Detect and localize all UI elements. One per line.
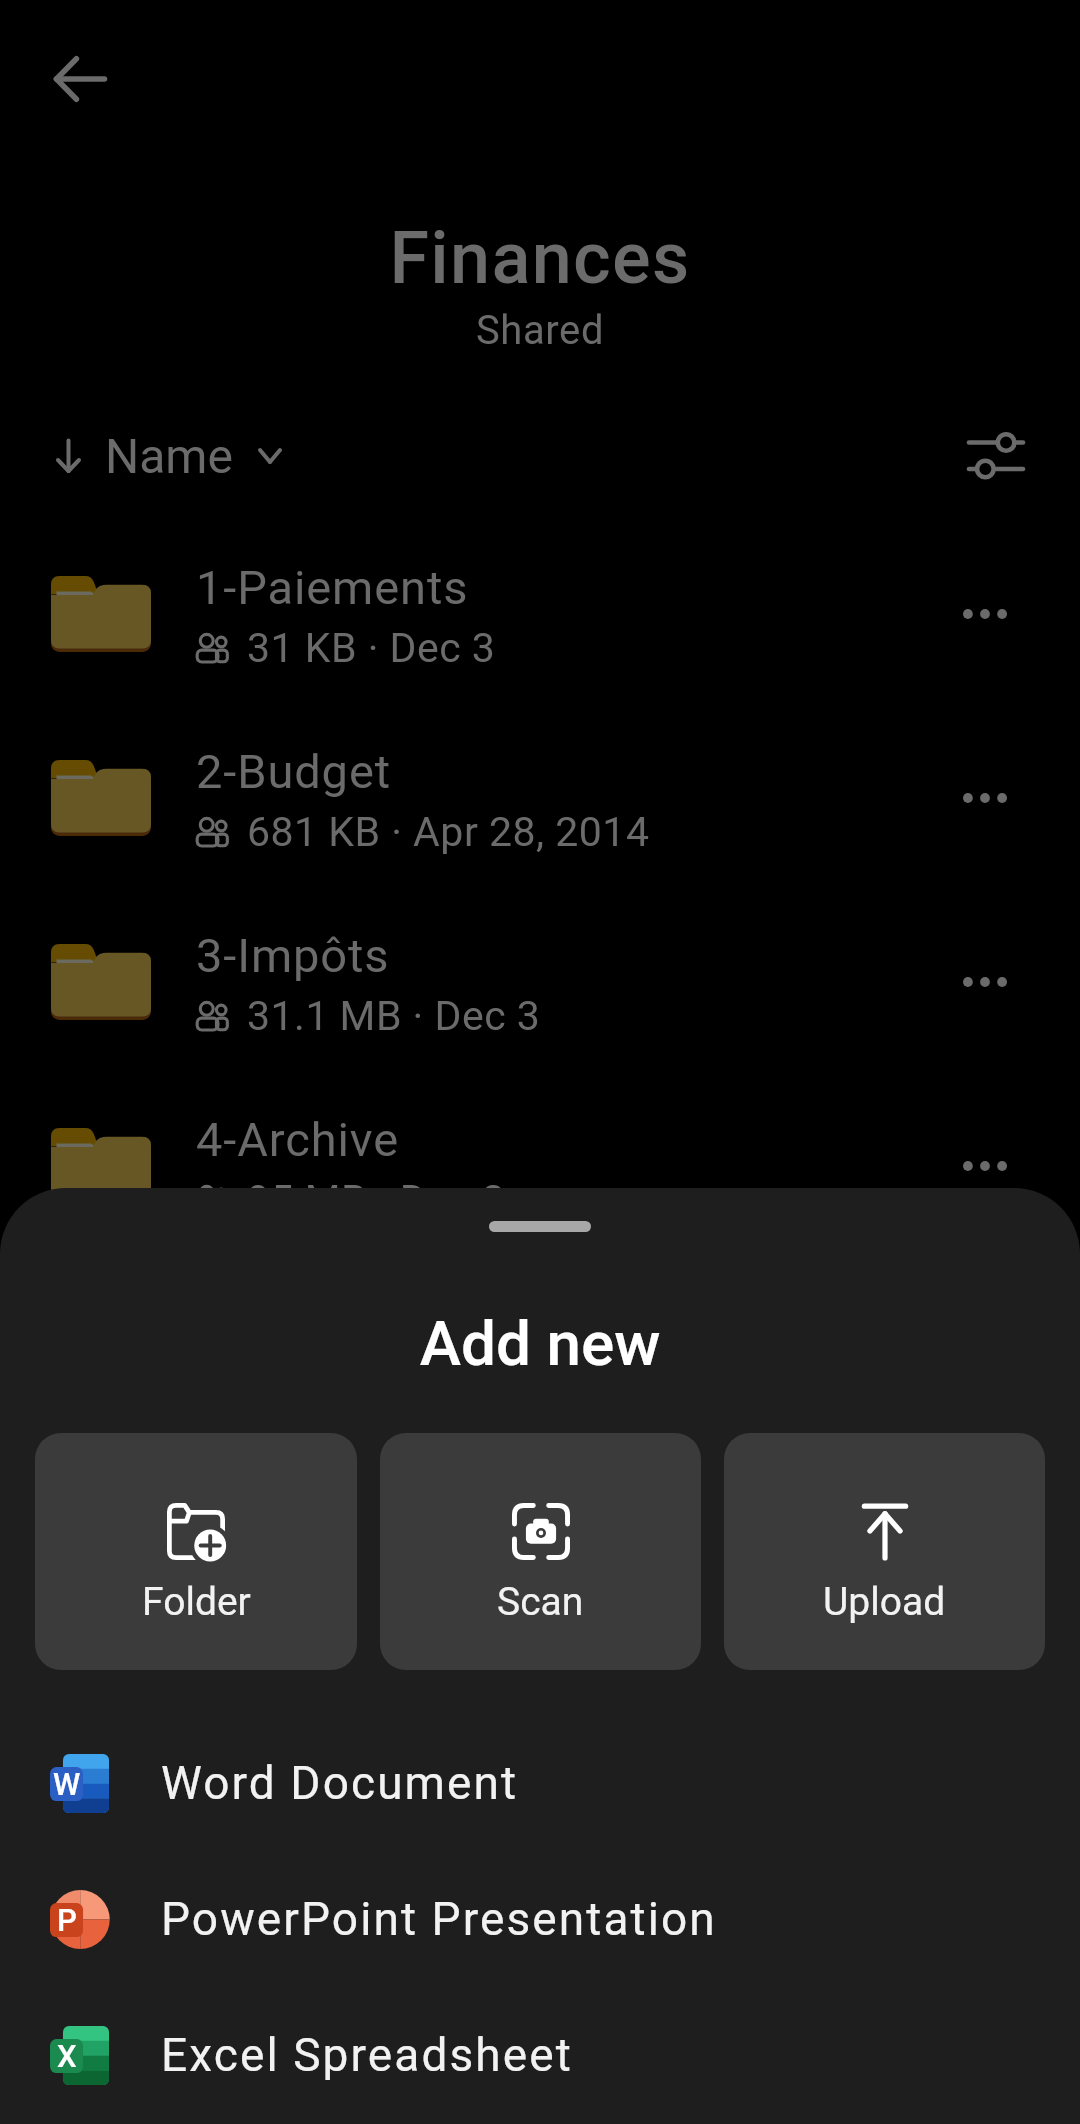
staticText: P: [57, 1902, 77, 1938]
button[interactable]: Scan: [380, 1433, 701, 1670]
staticText: Shared: [0, 307, 1080, 354]
button[interactable]: 3-Impôts: [0, 890, 1080, 1074]
staticText: 31.1 MB · Dec 3: [247, 992, 541, 1040]
button[interactable]: More options: [930, 927, 1040, 1037]
button[interactable]: 2-Budget: [0, 706, 1080, 890]
staticText: Word Document: [161, 1756, 519, 1810]
staticText: Add new: [0, 1307, 1080, 1380]
button[interactable]: More options: [930, 559, 1040, 669]
staticText: X: [57, 2038, 77, 2074]
button[interactable]: W: [0, 1715, 1080, 1851]
button[interactable]: X: [0, 1987, 1080, 2123]
button[interactable]: Folder: [35, 1433, 357, 1670]
staticText: 31 KB · Dec 3: [247, 624, 496, 672]
staticText: Name: [105, 428, 233, 484]
button[interactable]: 4-Archive: [0, 1074, 1080, 1258]
button[interactable]: More options: [930, 743, 1040, 853]
staticText: Excel Spreadsheet: [161, 2028, 573, 2082]
button[interactable]: Filter: [950, 410, 1042, 502]
staticText: 3-Impôts: [196, 928, 390, 983]
staticText: 1-Paiements: [196, 560, 469, 615]
staticText: 4-Archive: [196, 1112, 399, 1167]
staticText: Upload: [823, 1579, 946, 1625]
staticText: 681 KB · Apr 28, 2014: [247, 808, 650, 856]
staticText: 2-Budget: [196, 744, 391, 799]
button[interactable]: P: [0, 1851, 1080, 1987]
button[interactable]: Upload: [724, 1433, 1045, 1670]
staticText: 95 MB · Dec 3: [247, 1176, 506, 1224]
button[interactable]: Name: [44, 416, 294, 496]
staticText: Finances: [0, 216, 1080, 300]
button[interactable]: More options: [930, 1111, 1040, 1221]
staticText: Folder: [142, 1579, 251, 1625]
staticText: Scan: [497, 1579, 584, 1625]
staticText: W: [53, 1766, 81, 1802]
staticText: PowerPoint Presentation: [161, 1892, 717, 1946]
button[interactable]: 1-Paiements: [0, 522, 1080, 706]
button[interactable]: Back: [32, 31, 128, 127]
